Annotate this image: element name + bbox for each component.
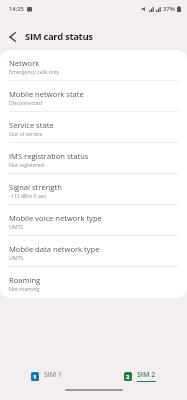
staticText: Disconnected (9, 99, 42, 106)
button[interactable]: Roaming (0, 267, 187, 298)
staticText: 14:25 (9, 5, 24, 13)
staticText: Emergency calls only (9, 68, 60, 75)
staticText: 1 (33, 373, 37, 381)
staticText: Mobile voice network type (9, 213, 102, 223)
staticText: Roaming (9, 275, 41, 285)
button[interactable]: IMS registration status (0, 143, 187, 174)
staticText: -113 dBm 0 asu (9, 192, 47, 199)
button[interactable]: 1 (31, 370, 62, 382)
staticText: UMTS (9, 223, 24, 230)
button[interactable]: Mobile voice network type (0, 205, 187, 236)
staticText: Not roaming (9, 285, 40, 292)
staticText: Signal strength (9, 182, 62, 192)
staticText: Out of service (9, 130, 43, 137)
staticText: SIM 1 (44, 370, 62, 380)
button[interactable]: Service state (0, 112, 187, 143)
staticText: Network (9, 58, 40, 68)
staticText: Not registered (9, 161, 44, 168)
staticText: IMS registration status (9, 151, 89, 161)
staticText: UMTS (9, 254, 24, 261)
staticText: 2 (126, 373, 130, 381)
staticText: 37% (163, 5, 175, 13)
staticText: SIM card status (25, 30, 93, 43)
staticText: SIM 2 (137, 370, 156, 380)
staticText: Mobile network state (9, 89, 84, 99)
staticText: Mobile data network type (9, 244, 100, 254)
button[interactable]: Network (0, 50, 187, 81)
button[interactable]: 2 (124, 370, 156, 382)
button[interactable]: Back (0, 23, 25, 50)
staticText: Service state (9, 120, 54, 130)
button[interactable]: Mobile network state (0, 81, 187, 112)
button[interactable]: Signal strength (0, 174, 187, 205)
button[interactable]: Mobile data network type (0, 236, 187, 267)
